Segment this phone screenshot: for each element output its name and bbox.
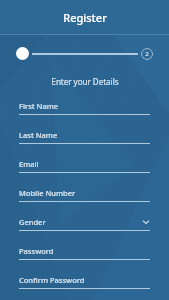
staticText: First Name bbox=[19, 101, 150, 111]
button[interactable]: Mobile Number bbox=[19, 183, 150, 202]
staticText: Enter your Details bbox=[51, 76, 119, 87]
staticText: Confirm Password bbox=[19, 275, 150, 285]
button[interactable]: Step 1 complete bbox=[16, 47, 29, 60]
button[interactable]: Gender bbox=[19, 212, 150, 231]
button[interactable]: Step 2 bbox=[141, 48, 153, 60]
staticText: Mobile Number bbox=[19, 188, 150, 198]
staticText: Gender bbox=[19, 217, 142, 227]
button[interactable]: Confirm Password bbox=[19, 270, 150, 289]
staticText: 2 bbox=[145, 50, 149, 58]
staticText: Email bbox=[19, 159, 150, 169]
staticText: Last Name bbox=[19, 130, 150, 140]
button[interactable]: Password bbox=[19, 241, 150, 260]
button[interactable]: First Name bbox=[19, 96, 150, 115]
staticText: Register bbox=[63, 10, 107, 25]
staticText: Password bbox=[19, 246, 150, 256]
button[interactable]: Last Name bbox=[19, 125, 150, 144]
button[interactable]: Email bbox=[19, 154, 150, 173]
